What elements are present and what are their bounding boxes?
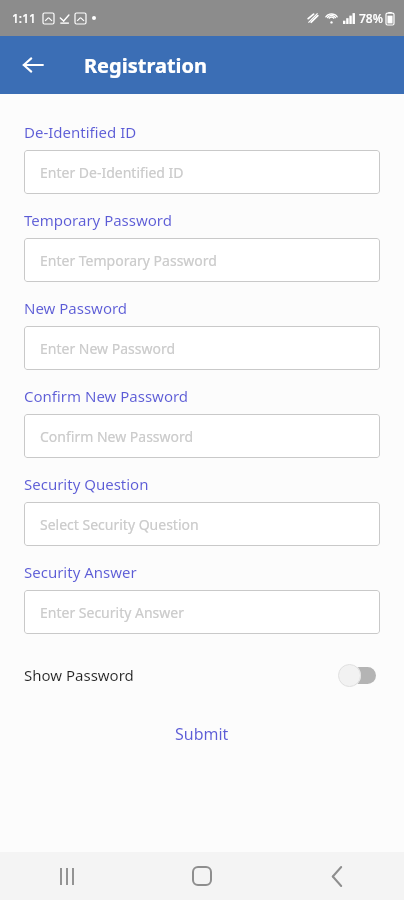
button[interactable]: Confirm New Password <box>24 414 380 458</box>
staticText: Submit <box>175 723 229 745</box>
staticText: 78% <box>359 10 383 26</box>
button[interactable]: Enter New Password <box>24 326 380 370</box>
staticText: Enter New Password <box>40 339 176 358</box>
button[interactable]: Show Password <box>0 652 404 698</box>
staticText: Confirm New Password <box>40 427 194 446</box>
staticText: Enter Temporary Password <box>40 251 217 270</box>
button[interactable]: Submit <box>0 714 404 754</box>
button[interactable]: Enter De-Identified ID <box>24 150 380 194</box>
staticText: Select Security Question <box>40 515 199 534</box>
button[interactable]: Home <box>134 852 269 900</box>
button[interactable]: Recent apps <box>0 852 134 900</box>
staticText: New Password <box>24 298 128 318</box>
staticText: Temporary Password <box>24 210 172 230</box>
staticText: Enter De-Identified ID <box>40 163 184 182</box>
staticText: Security Answer <box>24 562 137 582</box>
button[interactable]: Back <box>10 42 56 88</box>
staticText: Confirm New Password <box>24 386 189 406</box>
staticText: Security Question <box>24 474 149 494</box>
staticText: Registration <box>84 52 208 79</box>
button[interactable]: Back <box>269 852 404 900</box>
staticText: Enter Security Answer <box>40 603 184 622</box>
button[interactable]: Enter Temporary Password <box>24 238 380 282</box>
button[interactable]: Select Security Question <box>24 502 380 546</box>
staticText: Show Password <box>24 665 134 685</box>
staticText: 1:11 <box>12 10 36 26</box>
staticText: De-Identified ID <box>24 122 137 142</box>
button[interactable]: Enter Security Answer <box>24 590 380 634</box>
